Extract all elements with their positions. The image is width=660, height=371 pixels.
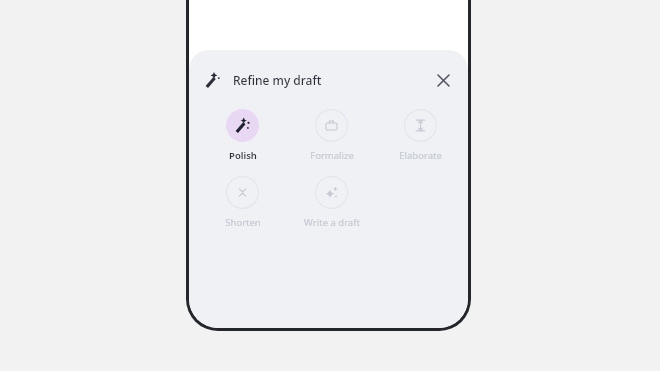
button[interactable]: Write a draft	[287, 174, 376, 231]
button[interactable]: Elaborate	[376, 107, 465, 164]
staticText: Write a draft	[304, 216, 360, 229]
button[interactable]: Close	[429, 66, 457, 94]
button[interactable]: Formalize	[287, 107, 376, 164]
staticText: Refine my draft	[233, 72, 322, 88]
staticText: Polish	[229, 149, 257, 162]
staticText: Shorten	[225, 216, 261, 229]
button[interactable]: Polish	[198, 107, 287, 164]
button[interactable]: Shorten	[198, 174, 287, 231]
staticText: Elaborate	[399, 149, 442, 162]
staticText: Formalize	[310, 149, 354, 162]
